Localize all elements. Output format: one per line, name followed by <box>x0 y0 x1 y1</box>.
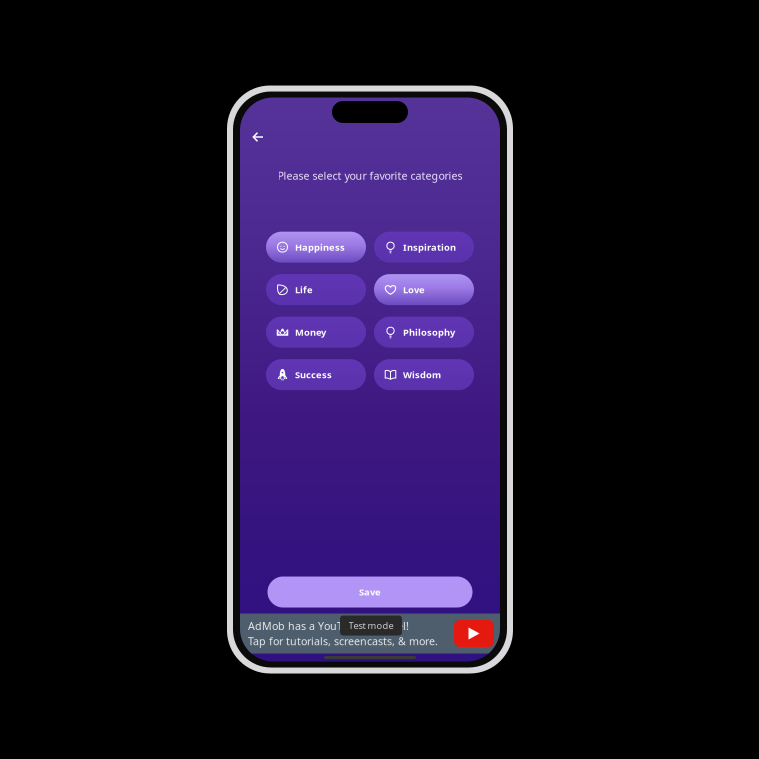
staticText: Philosophy <box>403 326 455 338</box>
staticText: Save <box>359 586 381 598</box>
staticText: Wisdom <box>403 368 441 381</box>
staticText: Money <box>295 326 326 338</box>
button[interactable]: Wisdom <box>374 359 474 390</box>
button[interactable]: Play video <box>454 620 494 647</box>
staticText: Happiness <box>295 241 345 253</box>
button[interactable]: Philosophy <box>374 317 474 348</box>
staticText: Please select your favorite categories <box>277 168 462 183</box>
button[interactable]: Life <box>266 274 366 305</box>
staticText: AdMob has a YouTube channel! <box>248 619 409 633</box>
button[interactable]: Success <box>266 359 366 390</box>
button[interactable]: Money <box>266 317 366 348</box>
button[interactable]: Inspiration <box>374 232 474 263</box>
staticText: Test mode <box>348 619 393 632</box>
button[interactable]: Love <box>374 274 474 305</box>
staticText: Love <box>403 283 425 296</box>
staticText: Success <box>295 368 332 381</box>
staticText: Tap for tutorials, screencasts, & more. <box>248 634 438 648</box>
button[interactable]: Back <box>246 125 270 148</box>
staticText: Inspiration <box>403 241 456 253</box>
button[interactable]: Happiness <box>266 232 366 263</box>
button[interactable]: Save <box>267 576 472 607</box>
staticText: Life <box>295 283 313 296</box>
